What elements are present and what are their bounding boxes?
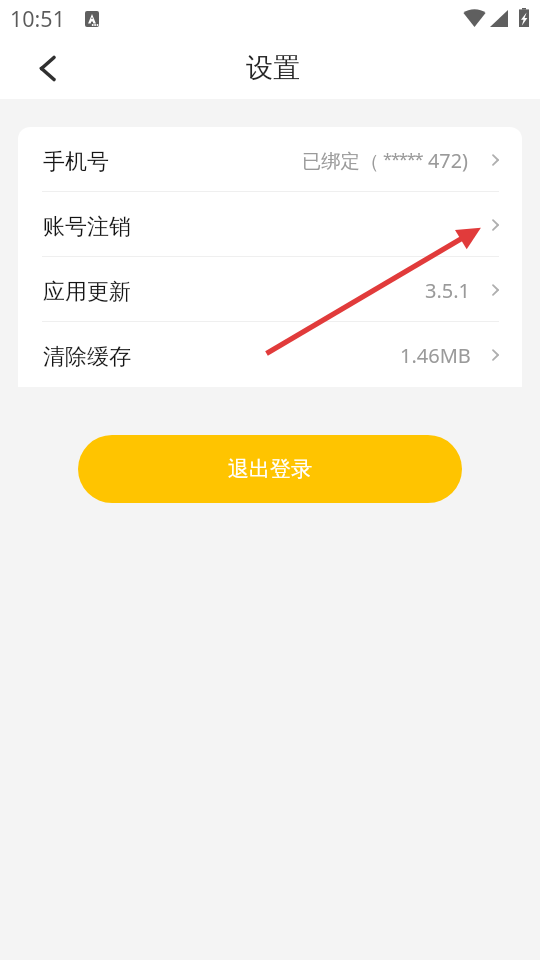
staticText: 10:51 bbox=[10, 4, 65, 33]
button[interactable]: 手机号 bbox=[18, 127, 522, 192]
button[interactable]: 应用更新 bbox=[18, 257, 522, 322]
staticText: ***** bbox=[383, 147, 423, 169]
staticText: 退出登录 bbox=[228, 456, 312, 482]
staticText: 1.46MB bbox=[400, 342, 471, 369]
button[interactable]: 退出登录 bbox=[78, 435, 462, 503]
button[interactable]: 清除缓存 bbox=[18, 322, 522, 387]
staticText: 472) bbox=[428, 147, 468, 174]
button[interactable]: Back bbox=[25, 46, 69, 90]
staticText: 应用更新 bbox=[43, 278, 131, 306]
staticText: 3.5.1 bbox=[425, 277, 471, 304]
button[interactable]: 账号注销 bbox=[18, 192, 522, 257]
staticText: 已绑定（ bbox=[302, 149, 380, 173]
staticText: 设置 bbox=[246, 51, 300, 85]
staticText: 账号注销 bbox=[43, 213, 131, 241]
staticText: 手机号 bbox=[43, 148, 109, 176]
staticText: 清除缓存 bbox=[43, 343, 131, 371]
